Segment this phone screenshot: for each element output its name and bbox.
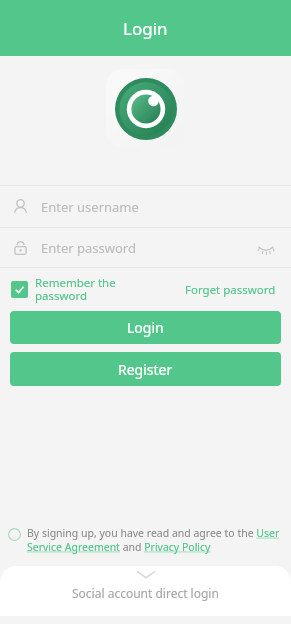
staticText: Enter password [41,239,253,257]
staticText: Forget password [185,282,276,298]
staticText: Remember the password [35,275,116,304]
staticText: By signing up, you have read and agree t… [27,526,283,554]
button[interactable]: Show password [253,235,279,261]
staticText: Login [127,318,164,337]
button[interactable]: Social account direct login [0,566,291,616]
button[interactable]: By signing up, you have read and agree t… [8,526,283,554]
staticText: Login [123,17,168,40]
button[interactable]: Enter password [0,228,291,267]
button[interactable]: Remember the password [11,275,116,304]
staticText: Register [118,360,173,379]
staticText: Social account direct login [72,585,219,601]
button[interactable]: Enter username [0,186,291,227]
button[interactable]: Login [10,311,281,344]
button[interactable]: Forget password [181,278,280,302]
button[interactable]: Register [10,352,281,386]
staticText: Enter username [41,198,139,216]
